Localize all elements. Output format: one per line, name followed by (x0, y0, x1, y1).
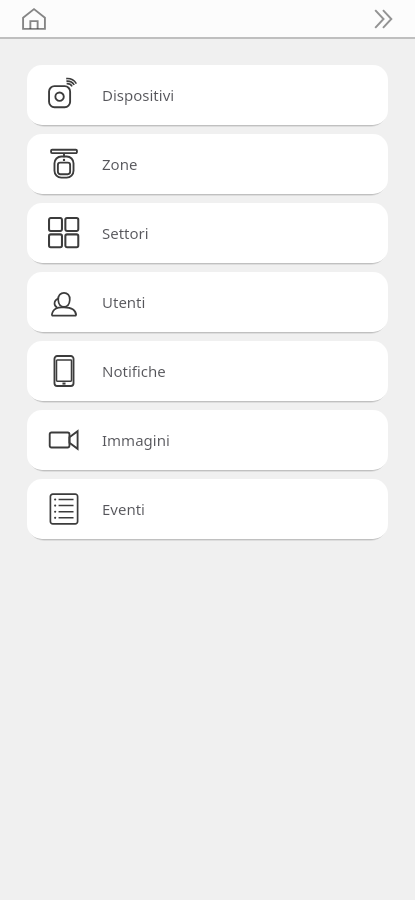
button[interactable]: Notifiche (27, 341, 388, 401)
button[interactable]: More (363, 0, 403, 37)
staticText: Utenti (102, 292, 146, 312)
button[interactable]: Home (14, 0, 54, 37)
staticText: Notifiche (102, 361, 166, 381)
staticText: Dispositivi (102, 85, 175, 105)
button[interactable]: Dispositivi (27, 65, 388, 125)
button[interactable]: Settori (27, 203, 388, 263)
staticText: Settori (102, 223, 149, 243)
button[interactable]: Zone (27, 134, 388, 194)
button[interactable]: Eventi (27, 479, 388, 539)
button[interactable]: Immagini (27, 410, 388, 470)
staticText: Immagini (102, 430, 170, 450)
staticText: Eventi (102, 499, 145, 519)
staticText: Zone (102, 154, 138, 174)
button[interactable]: Utenti (27, 272, 388, 332)
